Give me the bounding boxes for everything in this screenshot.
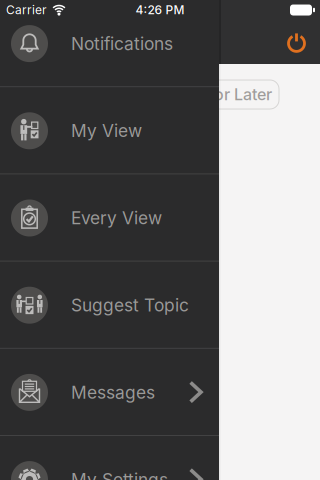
staticText: or Later (214, 85, 272, 104)
button[interactable]: Log Out (279, 25, 313, 59)
button[interactable]: or Later (159, 80, 279, 109)
staticText: Carrier (6, 3, 47, 17)
button[interactable]: Every View (0, 174, 219, 262)
staticText: Suggest Topic (71, 295, 189, 315)
staticText: My Settings (71, 469, 168, 480)
button[interactable]: My Settings (0, 436, 219, 480)
staticText: Notifications (71, 33, 173, 54)
staticText: 4:26 PM (135, 3, 184, 17)
button[interactable]: Suggest Topic (0, 262, 219, 349)
button[interactable]: Messages (0, 349, 219, 436)
staticText: Every View (71, 208, 162, 228)
staticText: My View (71, 121, 142, 141)
button[interactable]: My View (0, 87, 219, 174)
button[interactable]: Notifications (0, 0, 219, 87)
staticText: Messages (71, 382, 155, 403)
